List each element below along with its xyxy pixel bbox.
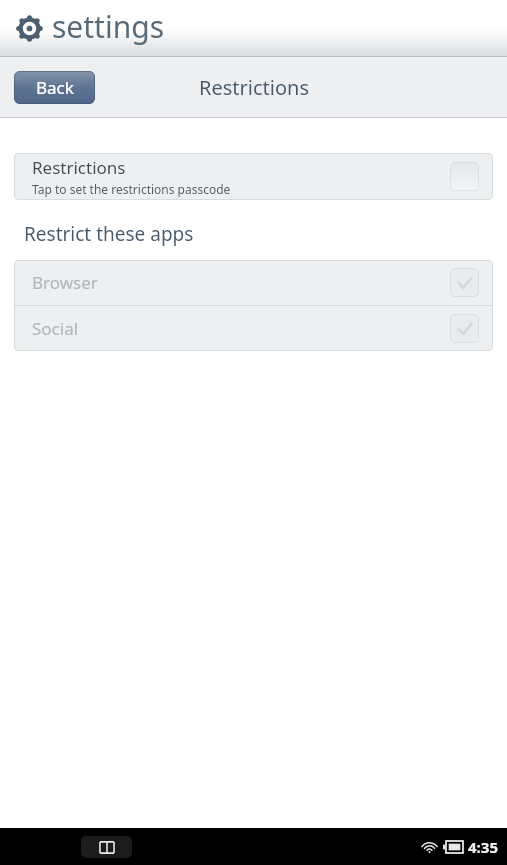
button[interactable]: Enable restrictions — [450, 162, 479, 191]
button[interactable]: Browser — [14, 260, 493, 305]
staticText: settings — [52, 6, 165, 47]
staticText: Browser — [32, 271, 98, 294]
button[interactable]: Social — [14, 306, 493, 351]
button[interactable]: Restrictions — [14, 153, 493, 200]
staticText: Restrict these apps — [24, 221, 194, 247]
button[interactable]: Back — [14, 71, 95, 104]
staticText: Restrictions — [32, 156, 126, 179]
button[interactable]: Recent apps — [81, 836, 132, 858]
staticText: 4:35 — [468, 837, 498, 857]
staticText: Tap to set the restrictions passcode — [32, 181, 231, 197]
staticText: Restrictions — [199, 74, 309, 101]
staticText: Back — [36, 76, 74, 99]
staticText: Social — [32, 317, 79, 340]
